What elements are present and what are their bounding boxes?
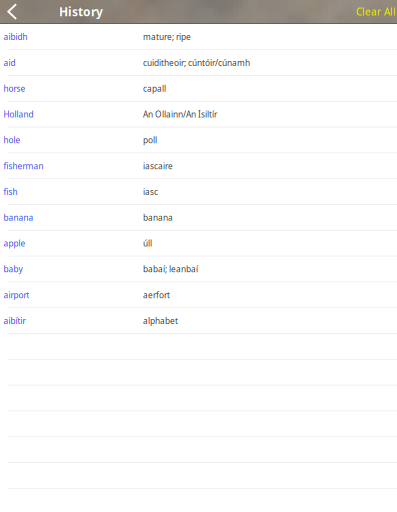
staticText: banana — [3, 212, 33, 223]
staticText: capall — [143, 83, 166, 94]
staticText: baby — [3, 263, 22, 275]
staticText: aibidh — [3, 31, 27, 42]
staticText: iascaire — [143, 160, 173, 171]
button[interactable]: Clear All — [356, 0, 397, 23]
button[interactable]: banana — [0, 205, 397, 231]
staticText: horse — [3, 83, 25, 94]
button[interactable]: hole — [0, 128, 397, 153]
staticText: úll — [143, 238, 152, 249]
button[interactable]: aibítir — [0, 308, 397, 334]
staticText: apple — [3, 238, 25, 249]
staticText: poll — [143, 134, 157, 146]
staticText: cuiditheoir; cúntóir/cúnamh — [143, 57, 250, 68]
staticText: babaí; leanbaí — [143, 263, 198, 275]
staticText: aid — [3, 57, 15, 68]
staticText: Holland — [3, 109, 33, 120]
staticText: iasc — [143, 186, 158, 197]
button[interactable]: fish — [0, 179, 397, 205]
staticText: fisherman — [3, 160, 43, 171]
button[interactable]: horse — [0, 76, 397, 102]
staticText: Clear All — [356, 5, 396, 18]
staticText: History — [59, 3, 103, 20]
staticText: mature; ripe — [143, 31, 191, 42]
button[interactable]: apple — [0, 231, 397, 257]
staticText: aerfort — [143, 289, 170, 300]
staticText: alphabet — [143, 315, 178, 326]
button[interactable]: Holland — [0, 102, 397, 128]
button[interactable]: aid — [0, 50, 397, 76]
staticText: fish — [3, 186, 17, 197]
button[interactable] — [0, 437, 397, 463]
staticText: An Ollainn/An Ísiltír — [143, 109, 217, 120]
button[interactable]: aibidh — [0, 24, 397, 50]
staticText: aibítir — [3, 315, 25, 326]
staticText: banana — [143, 212, 173, 223]
button[interactable]: History — [17, 0, 103, 23]
button[interactable]: Back — [0, 0, 17, 23]
staticText: hole — [3, 134, 20, 146]
button[interactable]: fisherman — [0, 153, 397, 179]
staticText: airport — [3, 289, 29, 300]
button[interactable]: airport — [0, 282, 397, 308]
button[interactable]: baby — [0, 257, 397, 282]
